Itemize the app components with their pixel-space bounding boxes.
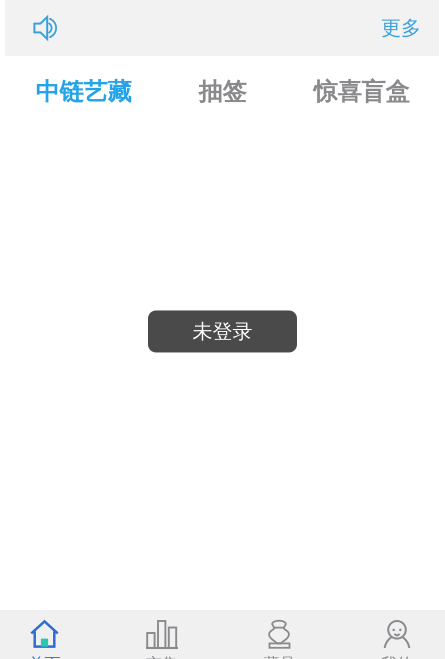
staticText: 惊喜盲盒 [313, 77, 409, 106]
staticText: 更多 [381, 16, 421, 40]
staticText: 抽签 [198, 77, 246, 106]
staticText: 未登录 [192, 319, 252, 344]
staticText: 首页 [28, 654, 60, 659]
staticText: 中链艺藏 [35, 77, 131, 106]
button[interactable]: 抽签 [153, 77, 292, 106]
button[interactable]: 我的 [338, 619, 445, 659]
button[interactable]: 中链艺藏 [14, 77, 153, 106]
staticText: 市集 [146, 654, 178, 659]
button[interactable]: 惊喜盲盒 [292, 77, 431, 106]
staticText: 我的 [381, 654, 413, 659]
button[interactable]: 未登录 [148, 310, 297, 352]
button[interactable]: 首页 [0, 619, 103, 659]
button[interactable]: Announcements [22, 5, 68, 51]
button[interactable]: 藏品 [221, 619, 338, 659]
button[interactable]: 更多 [373, 5, 429, 51]
staticText: 藏品 [263, 654, 295, 659]
button[interactable]: 市集 [103, 619, 221, 659]
